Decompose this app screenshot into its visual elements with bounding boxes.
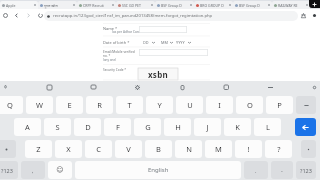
button[interactable]: Clipboard bbox=[177, 82, 188, 93]
button[interactable]: H bbox=[164, 118, 191, 136]
staticText: गूगल खोज bbox=[44, 3, 58, 8]
button[interactable]: S bbox=[44, 118, 71, 136]
button[interactable]: Apple bbox=[0, 1, 38, 9]
staticText: J bbox=[206, 122, 209, 132]
staticText: (as per Adhar Card) bbox=[112, 30, 141, 34]
staticText: A bbox=[25, 122, 30, 132]
button[interactable]: ?123 bbox=[296, 161, 316, 179]
button[interactable]: English bbox=[75, 161, 241, 179]
staticText: S bbox=[55, 122, 60, 132]
staticText: RAILWAY RE bbox=[278, 3, 298, 8]
button[interactable]: गूगल खोज bbox=[38, 1, 77, 9]
button[interactable]: New tab bbox=[309, 0, 320, 8]
button[interactable]: W bbox=[26, 96, 53, 114]
button[interactable]: GIF bbox=[88, 82, 99, 93]
button[interactable]: ☺ bbox=[48, 161, 72, 179]
button[interactable]: Profile bbox=[309, 9, 320, 22]
staticText: no. * bbox=[103, 54, 111, 58]
button[interactable]: ? bbox=[265, 140, 292, 158]
button[interactable]: Enter bbox=[295, 118, 316, 136]
staticText: BSF Group D bbox=[161, 3, 182, 8]
button[interactable]: RAILWAY RE bbox=[272, 1, 310, 9]
button[interactable]: F bbox=[104, 118, 131, 136]
button[interactable]: K bbox=[224, 118, 251, 136]
button[interactable]: , bbox=[21, 161, 45, 179]
button[interactable]: L bbox=[254, 118, 281, 136]
button[interactable]: SSC GD PET bbox=[116, 1, 155, 9]
button[interactable]: G bbox=[134, 118, 161, 136]
staticText: G bbox=[145, 122, 151, 132]
button[interactable]: xsbn bbox=[138, 68, 178, 80]
button[interactable]: Forward bbox=[23, 9, 34, 22]
staticText: U bbox=[187, 100, 193, 110]
button[interactable]: B bbox=[145, 140, 172, 158]
staticText: BRO GROUP D bbox=[200, 3, 224, 8]
button[interactable] bbox=[139, 26, 187, 33]
staticText: H bbox=[175, 122, 181, 132]
button[interactable]: Q bbox=[0, 96, 23, 114]
staticText: P bbox=[277, 100, 282, 110]
button[interactable] bbox=[139, 49, 208, 56]
staticText: E bbox=[67, 100, 72, 110]
button[interactable]: X bbox=[55, 140, 82, 158]
button[interactable]: recrutapp.in/123god_cienl1nsf_im_parund2… bbox=[44, 11, 298, 21]
button[interactable]: J bbox=[194, 118, 221, 136]
staticText: Y bbox=[157, 100, 162, 110]
button[interactable]: Tab list bbox=[0, 9, 11, 22]
button[interactable]: ! bbox=[235, 140, 262, 158]
button[interactable]: R bbox=[86, 96, 113, 114]
button[interactable]: Settings bbox=[132, 82, 143, 93]
button[interactable]: O bbox=[236, 96, 263, 114]
button[interactable]: E bbox=[56, 96, 83, 114]
button[interactable]: BSF Group D bbox=[155, 1, 194, 9]
staticText: R bbox=[97, 100, 102, 110]
staticText: ? bbox=[277, 144, 281, 154]
staticText: T bbox=[127, 100, 132, 110]
staticText: D bbox=[85, 122, 91, 132]
button[interactable]: Bookmark this page bbox=[298, 9, 309, 22]
button[interactable]: U bbox=[176, 96, 203, 114]
button[interactable]: I bbox=[206, 96, 233, 114]
button[interactable]: More options bbox=[265, 82, 276, 93]
button[interactable]: A bbox=[14, 118, 41, 136]
button[interactable]: BRO GROUP D bbox=[194, 1, 233, 9]
button[interactable]: Mic bbox=[309, 82, 320, 93]
button[interactable]: Back bbox=[11, 9, 22, 22]
button[interactable]: Shift bbox=[0, 140, 16, 158]
staticText: MM bbox=[161, 40, 168, 45]
button[interactable]: BSF Group D bbox=[233, 1, 272, 9]
button[interactable]: P bbox=[266, 96, 293, 114]
staticText: Email/Mobile verified bbox=[103, 50, 135, 54]
staticText: English bbox=[148, 166, 169, 174]
button[interactable]: Reload bbox=[35, 9, 46, 22]
button[interactable]: MM bbox=[161, 39, 173, 45]
button[interactable]: Translate bbox=[221, 82, 232, 93]
button[interactable]: Z bbox=[25, 140, 52, 158]
staticText: Date of birth * bbox=[103, 40, 130, 45]
button[interactable]: ?123 bbox=[0, 161, 18, 179]
staticText: (any one) bbox=[103, 58, 117, 62]
staticText: . bbox=[255, 167, 257, 174]
button[interactable]: Delete bbox=[301, 140, 316, 158]
button[interactable]: Voice input bbox=[0, 82, 11, 93]
button[interactable]: C bbox=[85, 140, 112, 158]
button[interactable]: N bbox=[175, 140, 202, 158]
button[interactable]: CRPF Recruit bbox=[77, 1, 116, 9]
staticText: recrutapp.in/123god_cienl1nsf_im_parund2… bbox=[53, 13, 213, 19]
button[interactable]: DD bbox=[143, 39, 155, 45]
button[interactable]: YYYY bbox=[176, 39, 191, 45]
button[interactable]: Y bbox=[146, 96, 173, 114]
button[interactable]: M bbox=[205, 140, 232, 158]
button[interactable]: V bbox=[115, 140, 142, 158]
button[interactable]: T bbox=[116, 96, 143, 114]
button[interactable]: Backspace bbox=[296, 96, 316, 114]
staticText: DD bbox=[143, 40, 149, 45]
staticText: K bbox=[235, 122, 240, 132]
staticText: O bbox=[247, 100, 253, 110]
button[interactable]: Sticker bbox=[44, 82, 55, 93]
staticText: L bbox=[266, 122, 270, 132]
button[interactable]: D bbox=[74, 118, 101, 136]
staticText: ?123 bbox=[1, 167, 13, 174]
